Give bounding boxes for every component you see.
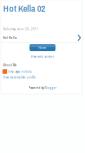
staticText: About Me [3,63,17,67]
staticText: Saturday, June 20, 2011 [3,27,39,31]
button[interactable]: Hot Kella 02 [0,0,85,15]
staticText: Powered by [28,85,43,90]
button[interactable]: loku ayya nodutu [0,69,85,74]
staticText: Home [38,45,46,50]
staticText: Hot Kella 02 [3,2,45,15]
button[interactable]: Hot Kella [0,34,85,41]
staticText: View my complete profile [3,75,36,79]
staticText: Hot Kella [3,35,17,40]
button[interactable]: Home [29,44,55,51]
staticText: View web version [30,54,54,59]
staticText: Blogger [44,85,56,90]
button[interactable]: View web version [30,54,54,59]
button[interactable]: View my complete profile [0,75,85,79]
button[interactable]: Blogger [44,85,56,90]
staticText: loku ayya nodutu [8,69,32,74]
